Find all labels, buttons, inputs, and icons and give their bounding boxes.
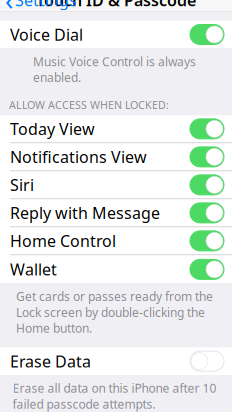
button[interactable]: Wallet bbox=[0, 255, 232, 283]
button[interactable]: Notifications View bbox=[0, 143, 232, 171]
staticText: Music Voice Control is always enabled. bbox=[33, 53, 196, 85]
staticText: Siri bbox=[10, 174, 34, 195]
staticText: Today View bbox=[10, 118, 95, 139]
button[interactable]: Siri bbox=[0, 171, 232, 199]
staticText: Wallet bbox=[10, 259, 57, 280]
staticText: Voice Dial bbox=[10, 24, 83, 45]
staticText: ‹ bbox=[5, 0, 13, 18]
staticText: Reply with Message bbox=[10, 202, 160, 223]
staticText: Touch ID & Passcode bbox=[36, 0, 196, 11]
button[interactable]: Home Control bbox=[0, 227, 232, 255]
button[interactable]: Reply with Message bbox=[0, 199, 232, 227]
button[interactable]: Erase Data bbox=[0, 347, 232, 375]
staticText: Get cards or passes ready from the Lock … bbox=[16, 288, 213, 336]
staticText: Home Control bbox=[10, 230, 116, 251]
button[interactable]: ‹ bbox=[0, 0, 83, 11]
staticText: Erase Data bbox=[10, 351, 91, 372]
staticText: Notifications View bbox=[10, 146, 147, 167]
staticText: Erase all data on this iPhone after 10 f… bbox=[12, 380, 216, 412]
button[interactable]: Today View bbox=[0, 115, 232, 143]
staticText: Settings bbox=[15, 0, 77, 11]
staticText: ALLOW ACCESS WHEN LOCKED: bbox=[9, 98, 169, 112]
button[interactable]: Voice Dial bbox=[0, 20, 232, 48]
